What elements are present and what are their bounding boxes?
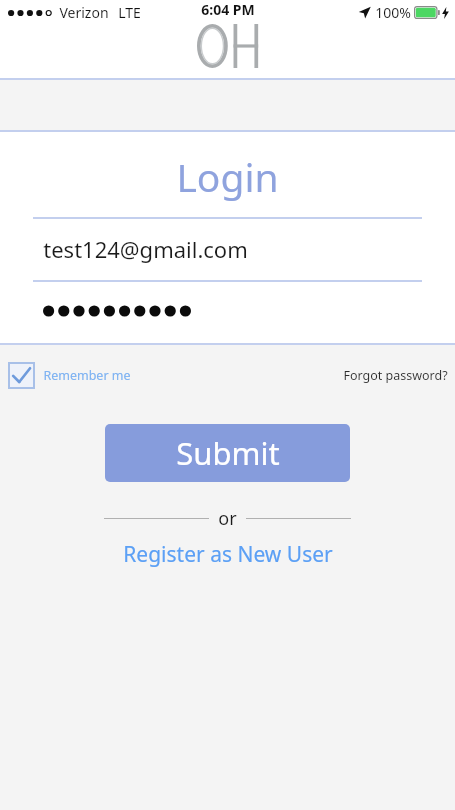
staticText: Register as New User: [123, 540, 333, 569]
button[interactable]: test124@gmail.com: [33, 218, 422, 280]
other: Remember me checkbox: [8, 362, 35, 389]
button[interactable]: Submit: [105, 424, 350, 482]
staticText: Forgot password?: [343, 367, 448, 384]
button[interactable]: Register as New User: [117, 536, 339, 573]
staticText: 100%: [375, 3, 411, 22]
staticText: 6:04 PM: [201, 0, 255, 19]
staticText: Submit: [176, 432, 280, 474]
staticText: or: [218, 506, 237, 531]
staticText: test124@gmail.com: [43, 234, 248, 264]
staticText: Verizon: [59, 3, 109, 22]
staticText: LTE: [118, 3, 141, 22]
button[interactable]: Remember me checkbox: [8, 362, 131, 389]
button[interactable]: Forgot password?: [341, 363, 450, 388]
staticText: Remember me: [43, 367, 131, 384]
button[interactable]: [33, 282, 422, 340]
staticText: Login: [176, 150, 279, 203]
